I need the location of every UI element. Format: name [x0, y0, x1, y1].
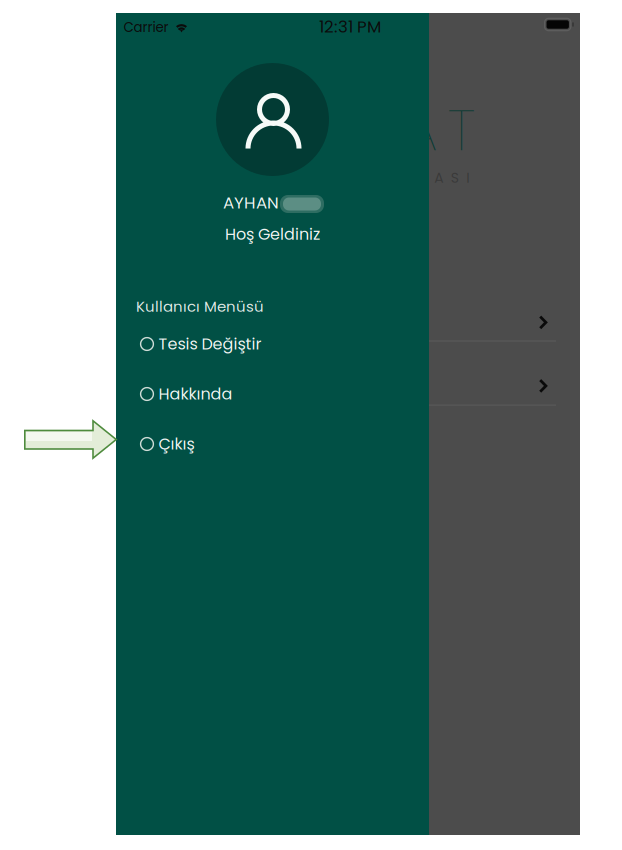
button[interactable]: Çıkış — [116, 423, 429, 465]
staticText: TAKİP UYGULAMASI — [233, 168, 469, 188]
staticText: Hoş Geldiniz — [225, 223, 320, 245]
staticText: Carrier — [123, 18, 168, 37]
staticText: 12:31 PM — [319, 15, 381, 38]
staticText: TESİSAT — [221, 90, 475, 170]
button[interactable]: Hakkında — [116, 373, 429, 415]
staticText: Hakkında — [158, 383, 232, 405]
staticText: Tesis Değiştir — [158, 333, 261, 355]
staticText: Çıkış — [158, 433, 194, 455]
staticText: AYHAN — [223, 191, 279, 214]
staticText: Kullanıcı Menüsü — [136, 296, 264, 317]
button[interactable]: Tesis Değiştir — [116, 323, 429, 365]
